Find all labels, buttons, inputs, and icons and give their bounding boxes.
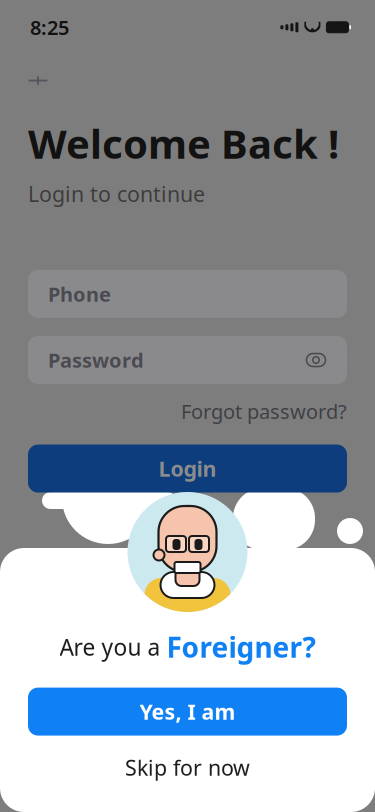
staticText: Password	[48, 347, 144, 373]
staticText: Forgot password?	[181, 398, 347, 425]
button[interactable]: Phone	[28, 270, 347, 318]
button[interactable]: Password	[28, 336, 347, 384]
staticText: Login	[158, 454, 216, 483]
button[interactable]: Forgot password?	[181, 398, 347, 425]
staticText: Phone	[48, 281, 111, 307]
staticText: Login to continue	[28, 180, 205, 208]
button[interactable]: Skip for now	[28, 750, 347, 786]
staticText: Skip for now	[125, 753, 250, 782]
staticText: Welcome Back !	[28, 117, 339, 170]
staticText: Are you a	[59, 632, 166, 662]
button[interactable]: Yes, I am	[28, 688, 347, 736]
staticText: 8:25	[30, 14, 69, 41]
button[interactable]: Back	[16, 59, 60, 103]
staticText: Yes, I am	[139, 697, 235, 726]
button[interactable]: Login	[28, 445, 347, 493]
staticText: Foreigner?	[166, 628, 315, 666]
